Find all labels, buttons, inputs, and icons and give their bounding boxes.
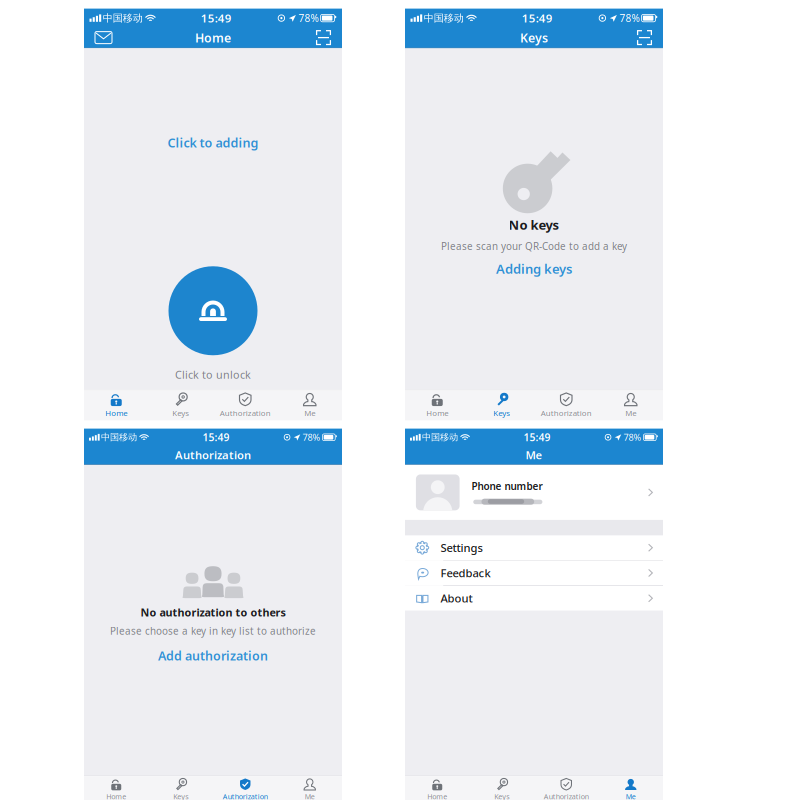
staticText: Authorization	[544, 792, 589, 800]
button[interactable]: Phone number	[405, 465, 663, 520]
staticText: About	[440, 591, 472, 606]
staticText: 15:49	[201, 10, 232, 26]
staticText: Me	[625, 408, 636, 418]
button[interactable]: Keys	[469, 390, 534, 420]
staticText: Add authorization	[158, 647, 268, 664]
button[interactable]: Authorization	[213, 776, 277, 800]
button[interactable]: Home	[84, 776, 148, 800]
staticText: Adding keys	[496, 260, 572, 278]
staticText: 中国移动	[424, 12, 464, 24]
button[interactable]: Add authorization	[150, 644, 276, 667]
button[interactable]: Me	[598, 390, 663, 420]
button[interactable]: Messages	[88, 29, 119, 47]
staticText: Please scan your QR-Code to add a key	[441, 239, 627, 253]
button[interactable]: Keys	[469, 776, 534, 800]
staticText: 78%	[303, 431, 321, 443]
staticText: Keys	[493, 408, 510, 418]
staticText: Home	[195, 29, 231, 46]
staticText: Me	[305, 792, 315, 800]
staticText: 78%	[619, 11, 639, 25]
staticText: Authorization	[220, 408, 271, 418]
button[interactable]: Click to unlock	[168, 266, 257, 382]
staticText: Settings	[440, 540, 482, 555]
button[interactable]: Scan QR code	[630, 29, 659, 47]
button[interactable]: Feedback	[405, 561, 663, 585]
staticText: 中国移动	[101, 431, 137, 443]
staticText: Click to unlock	[175, 367, 251, 382]
staticText: Keys	[494, 792, 509, 800]
button[interactable]: Me	[277, 390, 342, 420]
staticText: 15:49	[523, 430, 550, 444]
staticText: Home	[106, 792, 126, 800]
staticText: Authorization	[223, 792, 268, 800]
staticText: Please choose a key in key list to autho…	[110, 624, 316, 638]
staticText: Feedback	[440, 565, 490, 581]
button[interactable]: About	[405, 586, 663, 611]
button[interactable]: Settings	[405, 535, 663, 560]
button[interactable]: Click to adding	[159, 131, 266, 154]
staticText: Keys	[173, 792, 188, 800]
button[interactable]: Home	[405, 776, 469, 800]
staticText: Authorization	[175, 447, 251, 463]
button[interactable]: Scan QR code	[309, 29, 338, 47]
button[interactable]: Adding keys	[488, 257, 580, 281]
staticText: Keys	[172, 408, 189, 418]
staticText: Home	[426, 408, 448, 418]
staticText: No keys	[508, 216, 559, 233]
button[interactable]: Authorization	[213, 390, 277, 420]
staticText: Phone number	[471, 479, 542, 493]
button[interactable]: Home	[84, 390, 148, 420]
button[interactable]: Me	[277, 776, 342, 800]
button[interactable]: Keys	[148, 776, 213, 800]
button[interactable]: Authorization	[534, 776, 598, 800]
staticText: Authorization	[541, 408, 592, 418]
staticText: Me	[304, 408, 315, 418]
staticText: 中国移动	[422, 431, 458, 443]
staticText: 中国移动	[103, 12, 143, 24]
staticText: Home	[427, 792, 447, 800]
staticText: Me	[525, 447, 542, 463]
staticText: No authorization to others	[140, 605, 285, 620]
button[interactable]: Authorization	[534, 390, 598, 420]
staticText: Keys	[520, 29, 548, 46]
staticText: Click to adding	[167, 134, 258, 151]
staticText: 78%	[624, 431, 642, 443]
staticText: 78%	[298, 11, 318, 25]
staticText: 15:49	[202, 430, 229, 444]
button[interactable]: Me	[598, 776, 663, 800]
staticText: 15:49	[522, 10, 553, 26]
staticText: Me	[626, 792, 636, 800]
button[interactable]: Keys	[148, 390, 213, 420]
staticText: Home	[105, 408, 127, 418]
button[interactable]: Home	[405, 390, 469, 420]
